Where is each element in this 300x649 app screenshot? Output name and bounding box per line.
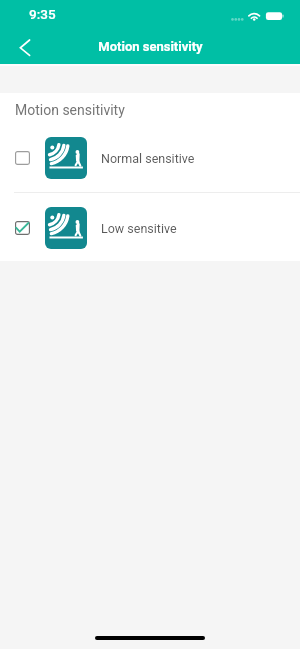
staticText: Motion sensitivity (15, 102, 125, 118)
staticText: Normal sensitive (101, 151, 195, 166)
staticText: Motion sensitivity (98, 39, 203, 54)
staticText: 9:35 (29, 6, 56, 22)
button[interactable]: Back (0, 28, 40, 64)
button[interactable]: Low sensitive (0, 193, 300, 262)
button[interactable]: Normal sensitive (0, 123, 300, 192)
staticText: Low sensitive (101, 221, 177, 236)
